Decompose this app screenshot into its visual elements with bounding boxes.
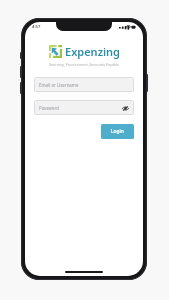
button[interactable]: Email or Username xyxy=(34,77,134,92)
staticText: Email or Username xyxy=(39,82,79,88)
staticText: Login xyxy=(111,128,124,135)
button[interactable]: Login xyxy=(101,124,134,139)
staticText: Sourcing, Procurement, Accounts Payable xyxy=(25,62,143,67)
staticText: 4:57 xyxy=(32,24,41,30)
button[interactable]: Password xyxy=(34,100,134,115)
button[interactable]: Show password xyxy=(121,104,129,112)
staticText: Password xyxy=(39,105,59,111)
staticText: Expenzing xyxy=(65,44,120,59)
